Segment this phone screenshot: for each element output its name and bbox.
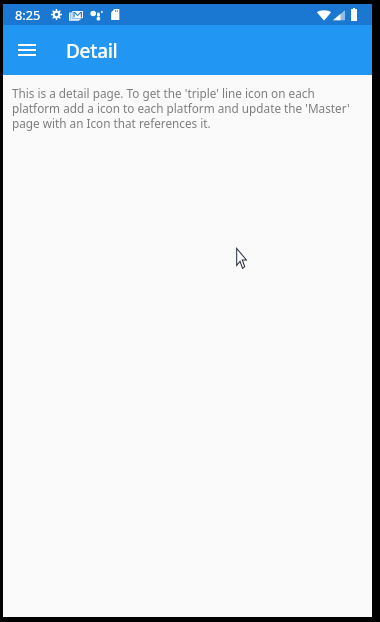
button[interactable]: Open navigation menu — [3, 25, 51, 75]
staticText: Detail — [66, 38, 118, 64]
staticText: 8:25 — [15, 6, 41, 23]
staticText: This is a detail page. To get the 'tripl… — [12, 85, 362, 131]
